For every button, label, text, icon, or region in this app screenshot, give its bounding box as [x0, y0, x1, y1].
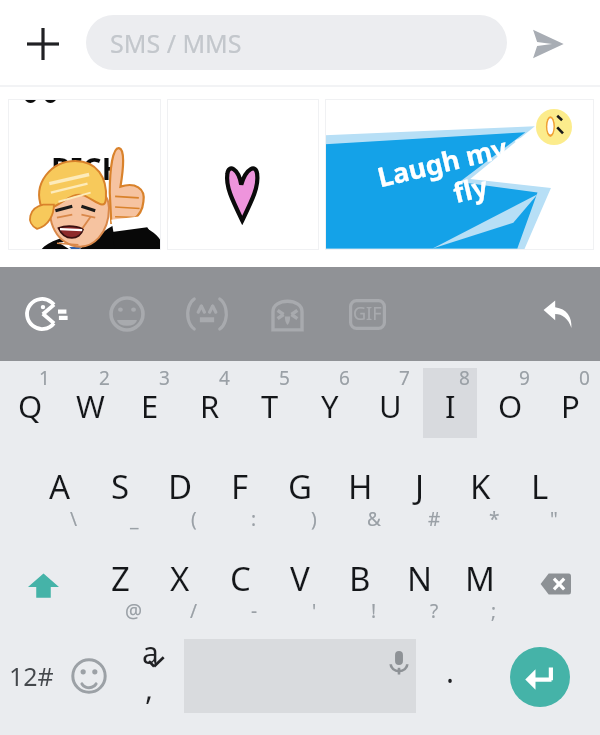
staticText: W — [76, 385, 105, 427]
button[interactable]: Back — [532, 289, 582, 339]
staticText: SMS / MMS — [110, 26, 242, 60]
button[interactable]: 6 — [300, 364, 360, 438]
staticText: K — [470, 464, 491, 509]
button[interactable]: ! — [330, 544, 390, 618]
staticText: D — [168, 464, 193, 509]
staticText: 9 — [519, 365, 530, 391]
staticText: fly — [449, 167, 492, 211]
staticText: _ — [130, 506, 139, 532]
button[interactable]: Backspace — [525, 554, 585, 614]
button[interactable]: Enter — [510, 647, 570, 707]
staticText: 7 — [399, 365, 410, 391]
button[interactable]: 12# — [0, 640, 62, 712]
button[interactable]: 3 — [120, 364, 180, 438]
button[interactable]: SMS / MMS — [86, 15, 507, 70]
staticText: / — [190, 598, 198, 624]
staticText: L — [531, 464, 549, 509]
staticText: Z — [111, 556, 130, 601]
staticText: P — [561, 385, 580, 427]
button[interactable]: : — [210, 452, 270, 526]
staticText: 6 — [339, 365, 350, 391]
staticText: M — [465, 556, 495, 601]
staticText: H — [348, 464, 373, 509]
button[interactable]: 8 — [420, 364, 480, 438]
staticText: @ — [125, 598, 143, 624]
staticText: 0 — [579, 365, 590, 391]
staticText: A — [49, 464, 71, 509]
staticText: 8 — [459, 365, 470, 391]
button[interactable]: / — [150, 544, 210, 618]
staticText: ? — [430, 598, 439, 624]
button[interactable]: GIF — [342, 289, 392, 339]
staticText: Q — [18, 385, 43, 427]
staticText: \ — [70, 506, 78, 532]
button[interactable]: ? — [390, 544, 450, 618]
button[interactable]: 1 — [0, 364, 60, 438]
staticText: & — [367, 506, 381, 532]
button[interactable]: 5 — [240, 364, 300, 438]
staticText: 2 — [99, 365, 110, 391]
button[interactable]: Emoji — [102, 289, 152, 339]
staticText: : — [251, 506, 257, 532]
button[interactable]: & — [330, 452, 390, 526]
staticText: S — [111, 464, 130, 509]
button[interactable]: _ — [90, 452, 150, 526]
staticText: a — [142, 632, 159, 673]
staticText: 1 — [39, 365, 50, 391]
button[interactable]: Space — [184, 639, 416, 713]
staticText: R — [200, 385, 220, 427]
staticText: # — [428, 506, 441, 532]
button[interactable]: Emoticons — [182, 289, 232, 339]
staticText: 5 — [279, 365, 290, 391]
button[interactable]: 4 — [180, 364, 240, 438]
button[interactable]: Sticker — [8, 99, 161, 250]
staticText: * — [489, 506, 500, 532]
staticText: RICH — [51, 148, 125, 189]
staticText: ' — [312, 598, 317, 624]
button[interactable]: * — [450, 452, 510, 526]
staticText: . — [446, 651, 455, 692]
button[interactable]: ; — [450, 544, 510, 618]
staticText: F — [231, 464, 249, 509]
button[interactable]: Add attachment — [18, 19, 68, 69]
staticText: GIF — [353, 301, 382, 326]
staticText: I — [445, 385, 456, 427]
button[interactable]: # — [390, 452, 450, 526]
button[interactable]: 2 — [60, 364, 120, 438]
staticText: ( — [191, 506, 197, 532]
staticText: X — [170, 556, 190, 601]
button[interactable]: Sticker — [325, 99, 594, 250]
button[interactable]: ) — [270, 452, 330, 526]
button[interactable]: Send — [522, 18, 574, 70]
button[interactable]: Language — [120, 640, 180, 712]
button[interactable]: ' — [270, 544, 330, 618]
button[interactable]: Shift — [13, 555, 73, 615]
button[interactable]: \ — [30, 452, 90, 526]
staticText: J — [415, 464, 425, 509]
button[interactable]: 0 — [540, 364, 600, 438]
button[interactable]: . — [424, 641, 476, 711]
button[interactable]: Emoji — [62, 640, 116, 712]
staticText: G — [288, 464, 313, 509]
staticText: O — [498, 385, 523, 427]
staticText: 12# — [9, 659, 54, 693]
staticText: Laugh my as — [373, 120, 546, 195]
button[interactable]: Stickers — [22, 289, 72, 339]
button[interactable]: 7 — [360, 364, 420, 438]
button[interactable]: - — [210, 544, 270, 618]
staticText: T — [261, 385, 279, 427]
button[interactable]: Sticker — [167, 99, 319, 250]
button[interactable]: 9 — [480, 364, 540, 438]
staticText: Y — [321, 385, 339, 427]
button[interactable]: ( — [150, 452, 210, 526]
staticText: , — [145, 668, 154, 709]
button[interactable]: @ — [90, 544, 150, 618]
staticText: " — [550, 506, 558, 532]
staticText: - — [251, 598, 258, 624]
staticText: U — [379, 385, 402, 427]
staticText: ; — [491, 598, 497, 624]
staticText: C — [230, 556, 251, 601]
staticText: ) — [311, 506, 317, 532]
button[interactable]: " — [510, 452, 570, 526]
button[interactable]: Avatar — [262, 289, 312, 339]
